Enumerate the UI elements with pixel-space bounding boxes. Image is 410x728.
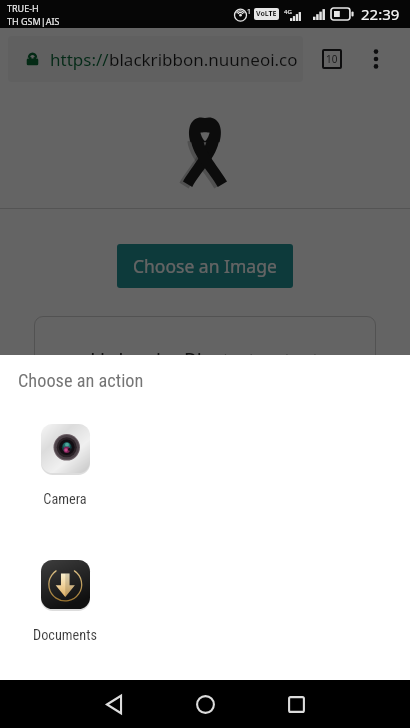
staticText: Choose an action bbox=[18, 370, 144, 391]
button[interactable]: Tabs bbox=[318, 45, 346, 73]
staticText: 4G bbox=[284, 8, 292, 16]
button[interactable]: Back bbox=[90, 680, 138, 728]
staticText: https:// bbox=[50, 48, 109, 71]
staticText: TRUE-H bbox=[7, 2, 39, 14]
staticText: 22:39 bbox=[361, 4, 400, 24]
staticText: 1 bbox=[247, 7, 252, 17]
staticText: Camera bbox=[43, 491, 87, 508]
staticText: Choose an Image bbox=[133, 254, 277, 278]
staticText: 10 bbox=[326, 52, 338, 66]
button[interactable]: Recents bbox=[272, 680, 320, 728]
button[interactable]: https:// bbox=[8, 36, 303, 82]
staticText: Documents bbox=[33, 627, 97, 644]
button[interactable]: Documents bbox=[16, 560, 114, 644]
button[interactable]: Camera bbox=[16, 424, 114, 508]
staticText: Upload a Photo to start bbox=[90, 347, 320, 376]
button[interactable]: More options bbox=[362, 45, 390, 73]
button[interactable]: Choose an Image bbox=[117, 244, 293, 288]
staticText: TH GSM|AIS bbox=[7, 15, 60, 27]
staticText: VoLTE bbox=[256, 9, 277, 19]
staticText: blackribbon.nuuneoi.co bbox=[109, 48, 298, 71]
button[interactable]: Home bbox=[181, 680, 229, 728]
